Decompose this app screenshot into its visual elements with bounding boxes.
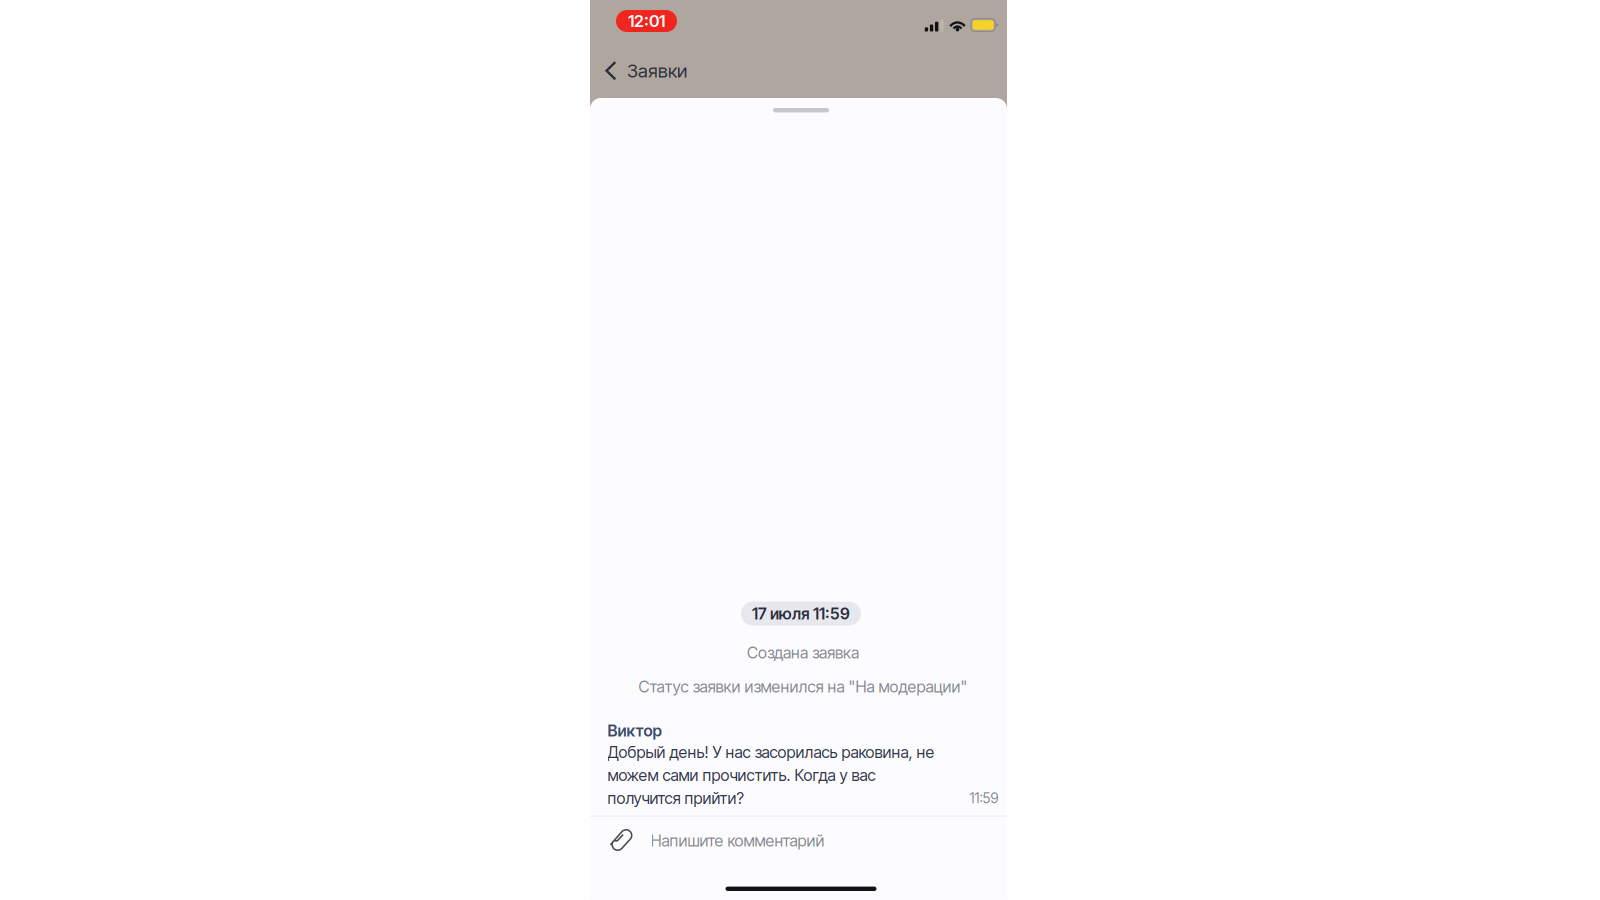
staticText: Добрый день! У нас засорилась раковина, … — [607, 742, 934, 762]
staticText: можем сами прочистить. Когда у вас — [607, 765, 875, 785]
staticText: 11:59 — [969, 790, 998, 806]
staticText: получится прийти? — [607, 788, 743, 808]
button[interactable]: Заявки — [590, 53, 699, 88]
staticText: 12:01 — [628, 11, 665, 31]
staticText: Напишите комментарий — [650, 831, 824, 850]
staticText: Создана заявка — [747, 643, 859, 662]
staticText: 17 июля 11:59 — [752, 604, 850, 623]
staticText: Виктор — [607, 721, 661, 740]
staticText: Статус заявки изменился на "На модерации… — [638, 677, 967, 696]
button[interactable]: Напишите комментарий — [590, 817, 1007, 865]
staticText: Заявки — [627, 59, 687, 82]
